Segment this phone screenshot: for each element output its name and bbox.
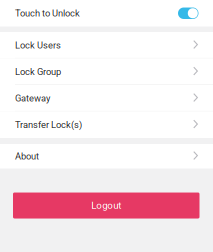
button[interactable]: Transfer Lock(s): [0, 111, 213, 138]
staticText: Touch to Unlock: [15, 8, 80, 19]
staticText: Logout: [91, 200, 121, 211]
staticText: About: [15, 151, 39, 162]
button[interactable]: About: [0, 144, 213, 168]
button[interactable]: Touch to Unlock: [0, 0, 213, 26]
staticText: Lock Group: [15, 66, 61, 77]
button[interactable]: Lock Group: [0, 58, 213, 85]
staticText: Transfer Lock(s): [15, 119, 82, 130]
staticText: Lock Users: [15, 40, 61, 51]
button[interactable]: Lock Users: [0, 32, 213, 58]
button[interactable]: Gateway: [0, 85, 213, 111]
staticText: Gateway: [15, 93, 50, 104]
button[interactable]: Logout: [13, 192, 199, 218]
